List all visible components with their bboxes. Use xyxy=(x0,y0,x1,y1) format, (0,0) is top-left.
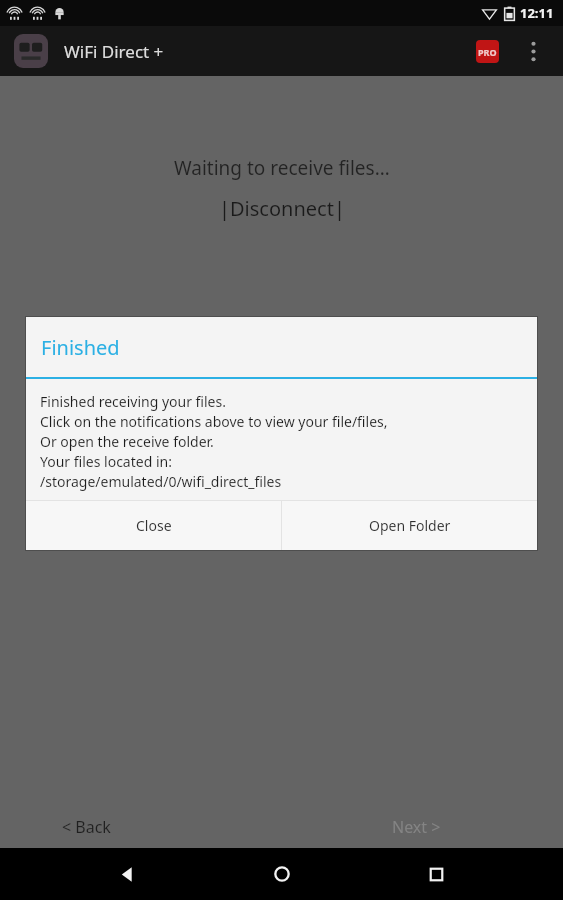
staticText: Your files located in: xyxy=(40,452,172,472)
staticText: Open Folder xyxy=(369,516,451,535)
staticText: Close xyxy=(136,516,172,535)
button[interactable]: |Disconnect| xyxy=(219,195,345,222)
button[interactable]: Close xyxy=(26,501,281,550)
staticText: PRO xyxy=(478,46,497,58)
staticText: Next > xyxy=(392,816,441,838)
button[interactable]: Open Folder xyxy=(282,501,537,550)
staticText: Or open the receive folder. xyxy=(40,432,214,452)
staticText: 12:11 xyxy=(520,4,554,22)
button[interactable]: Pro version xyxy=(465,29,509,73)
button[interactable]: Recent apps xyxy=(408,848,464,900)
staticText: |Disconnect| xyxy=(219,195,345,222)
staticText: < Back xyxy=(62,816,111,838)
staticText: WiFi Direct + xyxy=(64,40,164,63)
staticText: Finished xyxy=(41,334,120,361)
button[interactable]: More options xyxy=(509,27,557,75)
staticText: /storage/emulated/0/wifi_direct_files xyxy=(40,472,282,492)
button[interactable]: < Back xyxy=(44,808,129,846)
button[interactable]: Next > xyxy=(374,808,459,846)
staticText: Waiting to receive files… xyxy=(174,155,390,181)
staticText: Finished receiving your files. xyxy=(40,392,226,412)
button[interactable]: Back xyxy=(99,848,155,900)
button[interactable]: Home xyxy=(254,848,310,900)
staticText: Click on the notifications above to view… xyxy=(40,412,388,432)
